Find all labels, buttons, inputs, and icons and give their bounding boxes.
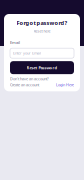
button[interactable]: Create an account [10, 82, 39, 87]
staticText: Login Here [56, 82, 74, 87]
staticText: Email [10, 40, 20, 45]
button[interactable]: Login Here [56, 82, 74, 87]
staticText: Enter your Email [13, 51, 41, 56]
staticText: Don't have an account? [10, 76, 49, 81]
staticText: Reset Password [26, 65, 57, 70]
staticText: Reset here [33, 29, 50, 34]
staticText: Forgot password? [16, 19, 67, 27]
staticText: Create an account [10, 82, 39, 87]
button[interactable]: Reset Password [10, 61, 74, 74]
